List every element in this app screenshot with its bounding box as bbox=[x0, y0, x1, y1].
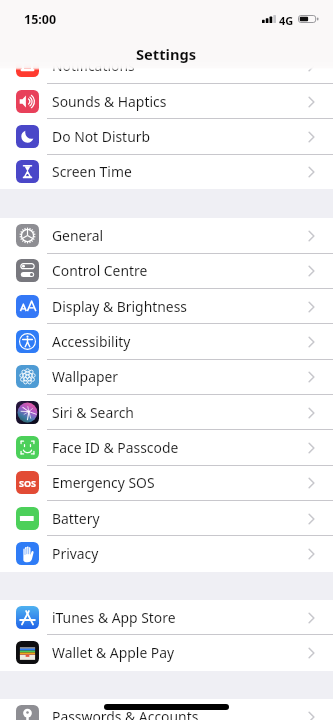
staticText: Accessibility bbox=[52, 332, 131, 351]
button[interactable]: Passwords & Accounts bbox=[0, 699, 333, 720]
button[interactable]: Display & Brightness bbox=[0, 289, 333, 324]
staticText: Passwords & Accounts bbox=[52, 707, 199, 720]
staticText: Siri & Search bbox=[52, 403, 134, 422]
button[interactable]: Accessibility bbox=[0, 324, 333, 359]
staticText: 15:00 bbox=[24, 11, 57, 28]
staticText: Wallet & Apple Pay bbox=[52, 643, 175, 662]
button[interactable]: Face ID & Passcode bbox=[0, 430, 333, 465]
staticText: Display & Brightness bbox=[52, 297, 187, 316]
staticText: Sounds & Haptics bbox=[52, 92, 167, 111]
button[interactable]: Screen Time bbox=[0, 154, 333, 189]
staticText: Emergency SOS bbox=[52, 473, 155, 492]
staticText: 4G bbox=[279, 13, 294, 28]
button[interactable]: Control Centre bbox=[0, 253, 333, 288]
staticText: Battery bbox=[52, 509, 100, 528]
button[interactable]: Notifications bbox=[0, 62, 333, 83]
staticText: Screen Time bbox=[52, 162, 132, 181]
staticText: Control Centre bbox=[52, 261, 148, 280]
staticText: iTunes & App Store bbox=[52, 608, 176, 627]
staticText: Face ID & Passcode bbox=[52, 438, 179, 457]
button[interactable]: Privacy bbox=[0, 536, 333, 571]
staticText: Do Not Disturb bbox=[52, 127, 150, 146]
staticText: Settings bbox=[136, 44, 197, 64]
staticText: Wallpaper bbox=[52, 367, 119, 386]
button[interactable]: Do Not Disturb bbox=[0, 119, 333, 154]
button[interactable]: SOS bbox=[0, 465, 333, 500]
button[interactable]: Wallpaper bbox=[0, 359, 333, 394]
button[interactable]: Battery bbox=[0, 501, 333, 536]
staticText: General bbox=[52, 226, 104, 245]
button[interactable]: General bbox=[0, 218, 333, 253]
staticText: SOS bbox=[19, 477, 37, 489]
staticText: Notifications bbox=[52, 62, 135, 75]
button[interactable]: Sounds & Haptics bbox=[0, 84, 333, 119]
staticText: Privacy bbox=[52, 544, 99, 563]
button[interactable]: Wallet & Apple Pay bbox=[0, 635, 333, 670]
button[interactable]: Siri & Search bbox=[0, 395, 333, 430]
button[interactable]: iTunes & App Store bbox=[0, 600, 333, 635]
